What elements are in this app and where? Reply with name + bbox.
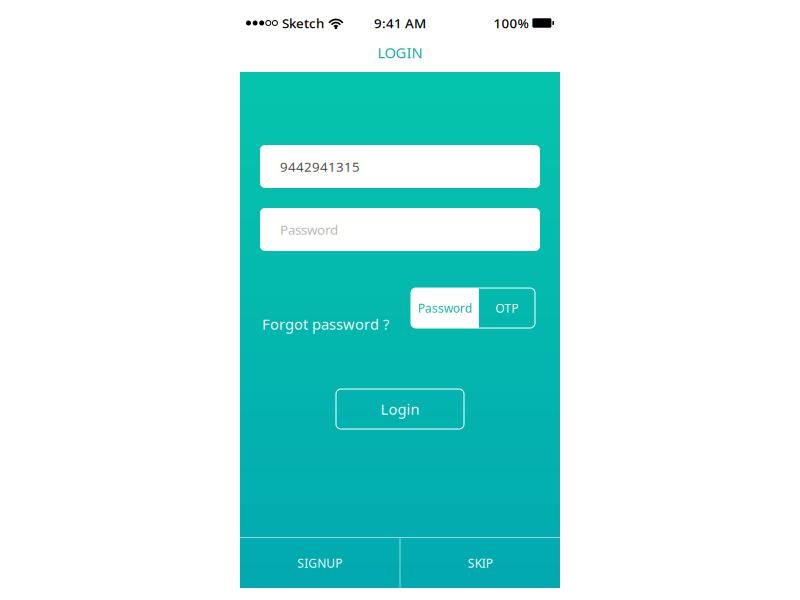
button[interactable]: Login xyxy=(336,389,464,429)
button[interactable]: Forgot password ? xyxy=(262,304,397,344)
staticText: SIGNUP xyxy=(297,555,342,571)
button[interactable]: SIGNUP xyxy=(240,538,399,588)
staticText: 100% xyxy=(493,14,528,32)
staticText: 9:41 AM xyxy=(374,14,426,32)
staticText: SKIP xyxy=(468,555,493,571)
staticText: Password xyxy=(280,221,338,238)
staticText: 9442941315 xyxy=(280,158,360,175)
staticText: Password xyxy=(418,300,472,316)
staticText: LOGIN xyxy=(377,43,422,62)
staticText: OTP xyxy=(495,300,518,316)
button[interactable]: Password xyxy=(411,288,479,328)
button[interactable]: OTP xyxy=(479,288,535,328)
staticText: Login xyxy=(380,399,419,419)
button[interactable]: 9442941315 xyxy=(260,145,540,188)
button[interactable]: SKIP xyxy=(400,538,560,588)
button[interactable]: Password xyxy=(260,208,540,251)
staticText: Forgot password ? xyxy=(262,314,389,334)
staticText: Sketch xyxy=(282,14,324,32)
